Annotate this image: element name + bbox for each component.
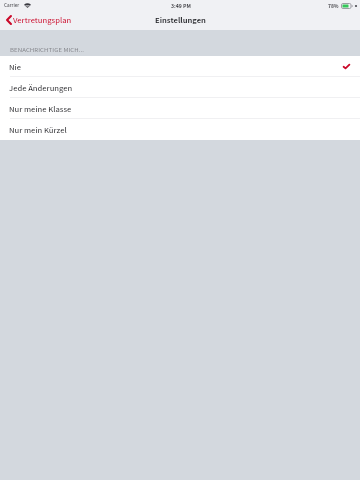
staticText: Nur mein Kürzel [9, 124, 67, 135]
other: Zurück [6, 15, 12, 25]
staticText: Vertretungsplan [13, 14, 72, 25]
staticText: Jede Änderungen [9, 82, 73, 93]
staticText: 3:49 PM [171, 2, 191, 10]
button[interactable]: Zurück [0, 11, 78, 27]
staticText: Einstellungen [155, 14, 206, 25]
staticText: BENACHRICHTIGE MICH... [10, 45, 85, 54]
button[interactable]: Nur meine Klasse [0, 98, 360, 119]
staticText: Nie [9, 61, 21, 72]
other: Ausgewählt [343, 64, 350, 69]
button[interactable]: Nie [0, 56, 360, 77]
staticText: Carrier [4, 2, 20, 9]
staticText: Nur meine Klasse [9, 103, 72, 114]
button[interactable]: Nur mein Kürzel [0, 119, 360, 140]
staticText: 78% [328, 2, 339, 9]
button[interactable]: Jede Änderungen [0, 77, 360, 98]
